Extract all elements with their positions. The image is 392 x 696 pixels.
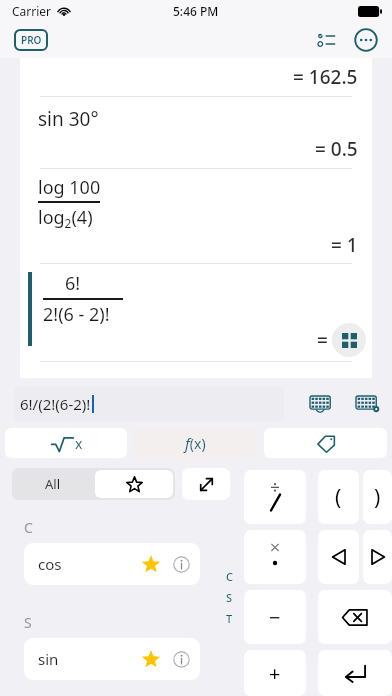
button[interactable]: Minus <box>244 590 306 644</box>
button[interactable]: Divide <box>244 470 306 524</box>
button[interactable]: Show result grid <box>332 323 366 357</box>
button[interactable]: Favorite sin <box>136 644 166 674</box>
staticText: log 100 <box>38 175 101 200</box>
button[interactable]: sin 30° <box>20 97 372 168</box>
button[interactable]: Move left <box>318 530 359 584</box>
staticText: = 1 <box>331 232 358 258</box>
button[interactable]: Keyboard <box>306 389 336 419</box>
button[interactable]: More options <box>350 24 382 56</box>
button[interactable]: All <box>12 468 93 500</box>
staticText: x <box>75 434 83 453</box>
button[interactable]: Favorites <box>95 470 173 498</box>
button[interactable]: cos <box>24 543 200 585</box>
button[interactable]: Move right <box>363 530 392 584</box>
button[interactable]: sin <box>24 638 200 680</box>
button[interactable]: Close parenthesis <box>363 470 392 524</box>
staticText: C <box>24 518 33 537</box>
button[interactable]: Open parenthesis <box>318 470 359 524</box>
button[interactable] <box>264 428 387 458</box>
staticText: 5:46 PM <box>173 3 219 19</box>
staticText: Carrier <box>12 3 52 19</box>
button[interactable]: PRO <box>14 29 48 51</box>
staticText: cos <box>38 554 136 574</box>
staticText: ) <box>374 483 381 512</box>
button[interactable]: Backspace <box>318 590 392 644</box>
button[interactable]: f(x) <box>134 428 257 458</box>
button[interactable]: Expand <box>182 468 230 500</box>
staticText: sin <box>38 649 136 669</box>
button[interactable]: Enter <box>318 650 392 696</box>
button[interactable]: Info about cos <box>166 549 196 579</box>
staticText: sin 30° <box>38 106 99 132</box>
staticText: = 0.5 <box>315 136 358 162</box>
button[interactable]: 6!/(2!(6-2)! <box>14 387 284 421</box>
staticText: 6! <box>65 271 81 296</box>
button[interactable]: Plus <box>244 650 306 696</box>
button[interactable]: 6! <box>20 264 372 361</box>
staticText: ( <box>335 483 342 512</box>
button[interactable]: Select list <box>312 25 342 55</box>
staticText: 2!(6 - 2)! <box>43 302 110 327</box>
staticText: T <box>226 611 233 626</box>
staticText: 6!/(2!(6-2)! <box>20 394 91 414</box>
staticText: C <box>226 569 233 584</box>
staticText: S <box>24 613 32 632</box>
staticText: PRO <box>21 33 42 47</box>
staticText: = <box>317 327 328 353</box>
staticText: = 162.5 <box>293 64 358 90</box>
staticText: f(x) <box>185 433 206 453</box>
button[interactable]: Multiply <box>244 530 306 584</box>
button[interactable]: log 100 <box>20 169 372 263</box>
staticText: S <box>226 590 233 605</box>
button[interactable]: x <box>5 428 127 458</box>
button[interactable]: Custom keyboard <box>352 389 382 419</box>
button[interactable]: Info about sin <box>166 644 196 674</box>
staticText: log2(4) <box>38 205 93 232</box>
staticText: + <box>269 660 281 687</box>
staticText: − <box>269 604 281 631</box>
button[interactable]: Favorite cos <box>136 549 166 579</box>
staticText: All <box>45 475 61 493</box>
